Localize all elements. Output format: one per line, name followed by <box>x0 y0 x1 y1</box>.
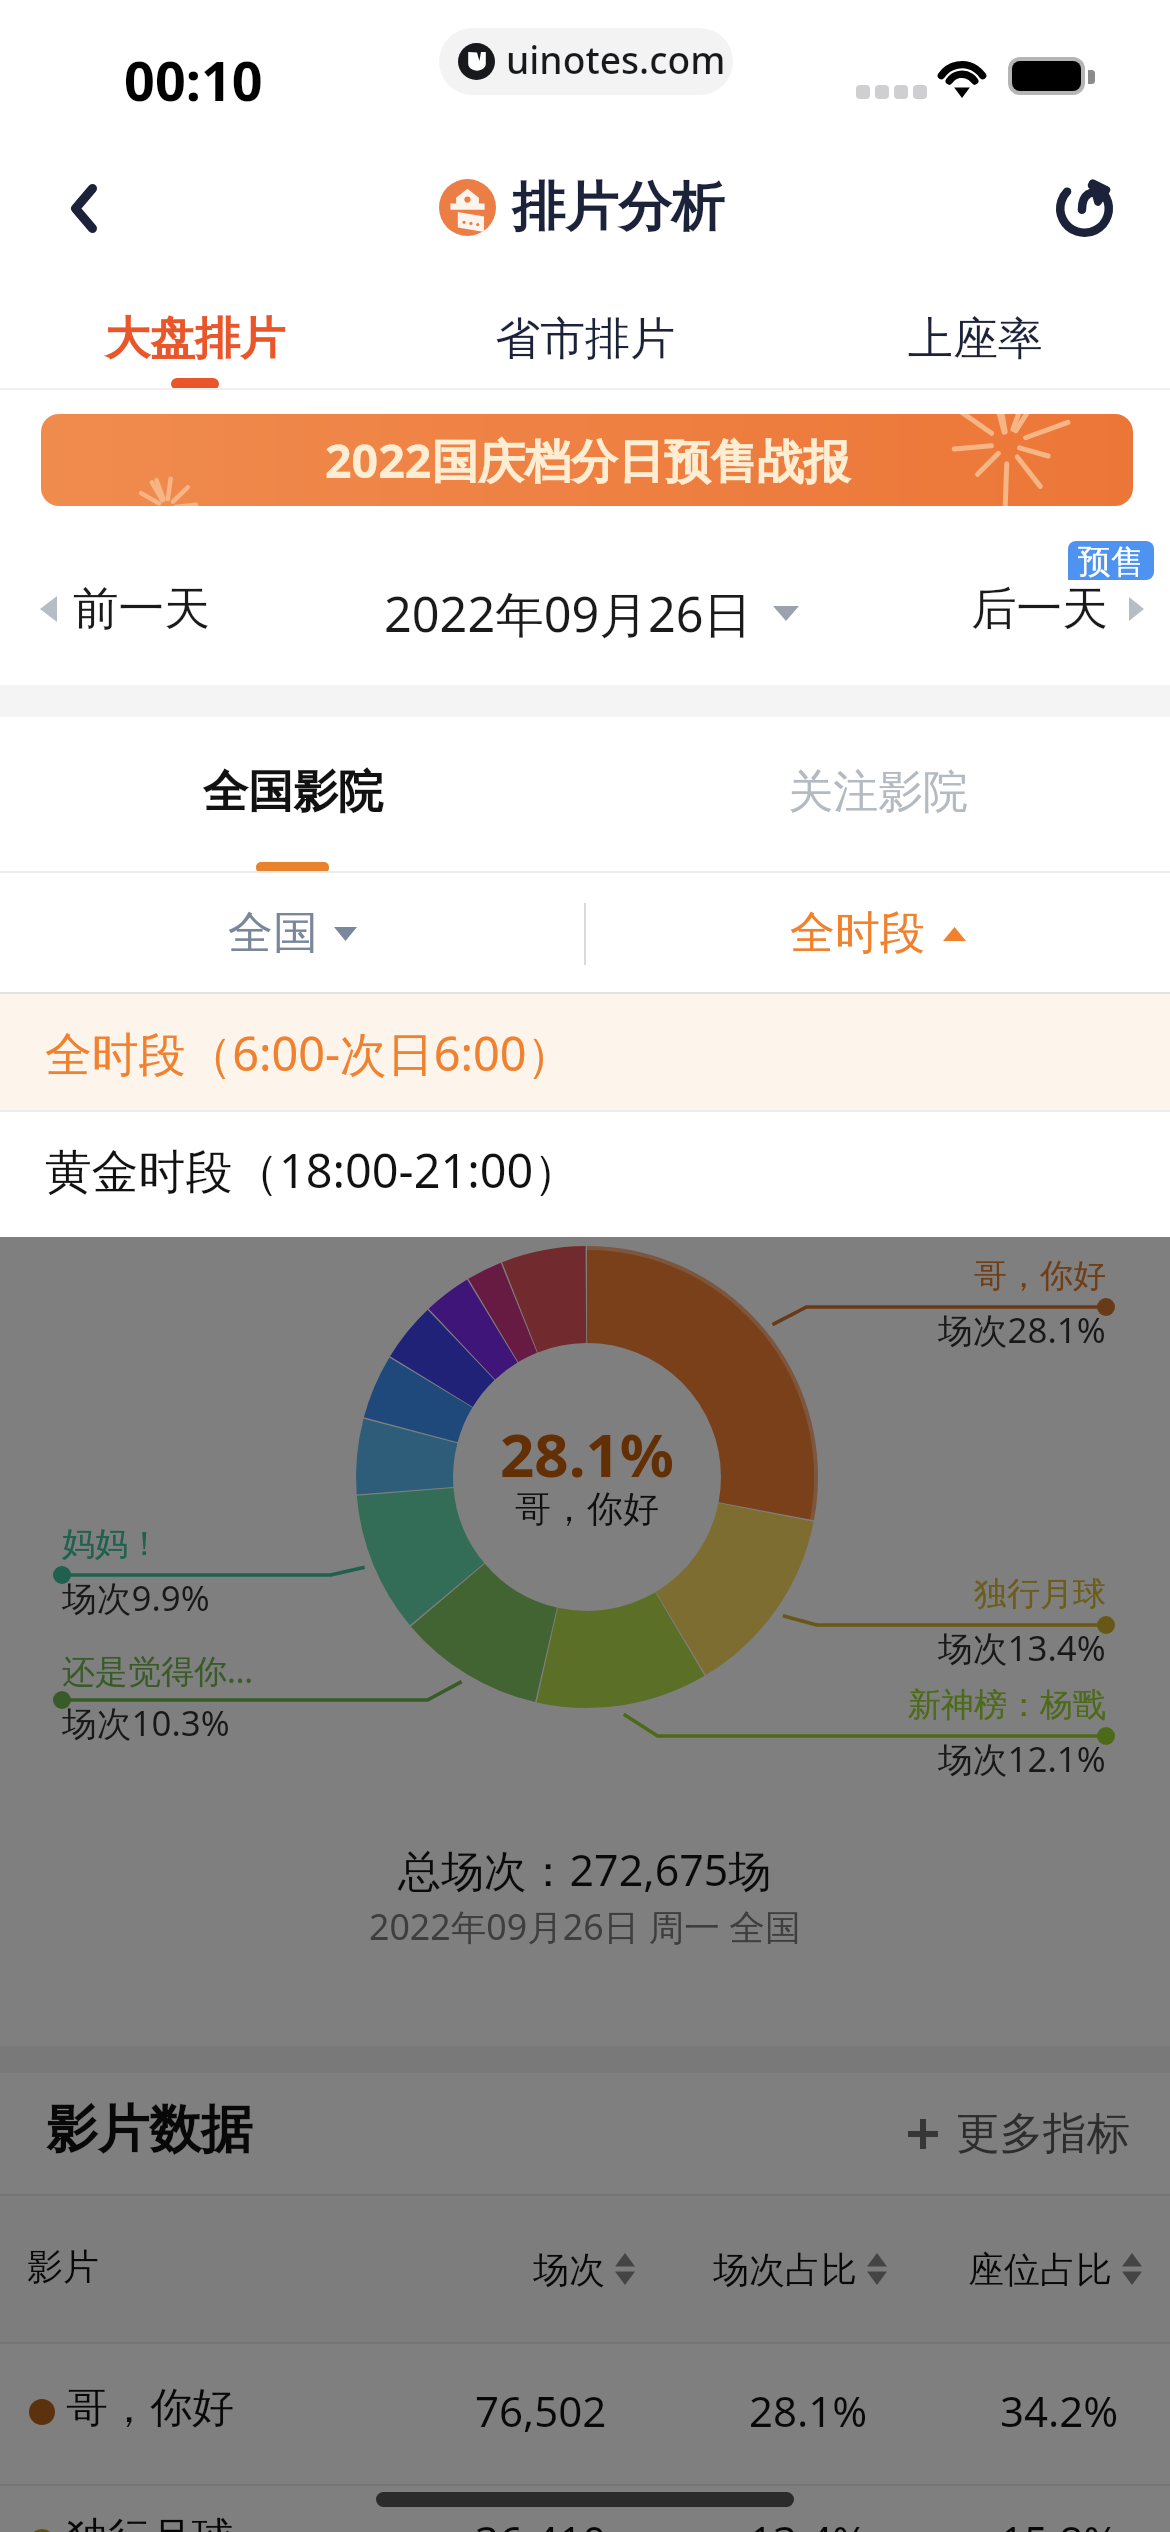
staticText: uinotes.com <box>506 34 726 85</box>
staticText: 前一天 <box>73 580 210 637</box>
staticText: 更多指标 <box>956 2106 1130 2161</box>
staticText: 哥，你好 <box>66 2382 234 2435</box>
button[interactable]: 独行月球 <box>0 2484 1170 2532</box>
staticText: 28.1% <box>500 1413 674 1495</box>
staticText: 全国影院 <box>203 764 383 821</box>
staticText: 13.4% <box>749 2512 868 2532</box>
button[interactable]: 省市排片 <box>390 276 780 398</box>
staticText: 场次9.9% <box>62 1574 210 1622</box>
staticText: 场次 <box>533 2247 605 2292</box>
staticText: 34.2% <box>1000 2382 1119 2439</box>
staticText: 76,502 <box>475 2382 607 2439</box>
button[interactable]: 黄金时段（18:00-21:00） <box>0 1112 1170 1237</box>
button[interactable]: 更多指标 <box>908 2106 1130 2161</box>
staticText: 00:10 <box>124 43 263 117</box>
staticText: 座位占比 <box>968 2247 1112 2292</box>
button[interactable]: 全时段（6:00-次日6:00） <box>0 994 1170 1112</box>
staticText: 哥，你好 <box>515 1486 659 1531</box>
button[interactable]: 大盘排片 <box>0 276 390 398</box>
staticText: 影片数据 <box>46 2097 253 2162</box>
staticText: 妈妈！ <box>62 1523 161 1565</box>
staticText: 独行月球 <box>974 1573 1106 1615</box>
button[interactable]: 场次 <box>454 2194 714 2344</box>
staticText: 2022年09月26日 <box>384 580 753 646</box>
staticText: 场次10.3% <box>62 1699 230 1747</box>
staticText: 独行月球 <box>66 2512 234 2532</box>
button[interactable]: Share <box>998 140 1170 276</box>
staticText: 新神榜：杨戬 <box>908 1684 1106 1726</box>
staticText: 全时段（6:00-次日6:00） <box>45 1021 574 1085</box>
staticText: 2022年09月26日 周一 全国 <box>369 1902 801 1951</box>
button[interactable]: 全国影院 <box>0 717 585 873</box>
staticText: 省市排片 <box>495 311 675 368</box>
staticText: 28.1% <box>749 2382 868 2439</box>
button[interactable]: 2022年09月26日 <box>384 580 799 646</box>
button[interactable]: Back <box>0 140 168 276</box>
staticText: 场次13.4% <box>938 1624 1106 1672</box>
staticText: 预售 <box>1078 541 1144 580</box>
button[interactable]: 哥，你好 <box>0 2344 1170 2484</box>
staticText: 关注影院 <box>788 764 968 821</box>
button[interactable]: 座位占比 <box>925 2194 1170 2344</box>
staticText: 总场次：272,675场 <box>398 1840 772 1899</box>
staticText: 还是觉得你… <box>62 1648 254 1693</box>
button[interactable]: 全时段 <box>585 873 1170 994</box>
staticText: 场次28.1% <box>938 1306 1106 1354</box>
staticText: 2022国庆档分日预售战报 <box>325 428 850 492</box>
staticText: 全国 <box>228 905 318 962</box>
button[interactable]: 2022国庆档分日预售战报 <box>41 414 1133 506</box>
staticText: 36,410 <box>475 2512 607 2532</box>
button[interactable]: 场次占比 <box>670 2194 930 2344</box>
staticText: 场次12.1% <box>938 1735 1106 1783</box>
staticText: 大盘排片 <box>105 311 285 368</box>
staticText: 黄金时段（18:00-21:00） <box>45 1138 581 1202</box>
staticText: 15.8% <box>1000 2512 1119 2532</box>
staticText: 哥，你好 <box>974 1255 1106 1297</box>
staticText: 影片 <box>27 2244 99 2289</box>
staticText: 后一天 <box>971 580 1108 637</box>
staticText: 全时段 <box>790 905 925 962</box>
button[interactable]: 关注影院 <box>585 717 1170 873</box>
button[interactable]: 全国 <box>0 873 585 994</box>
staticText: 场次占比 <box>713 2247 857 2292</box>
button[interactable]: 前一天 <box>40 580 210 637</box>
staticText: 排片分析 <box>512 174 725 241</box>
staticText: 上座率 <box>908 311 1043 368</box>
button[interactable]: 后一天 <box>971 580 1144 637</box>
button[interactable]: 上座率 <box>780 276 1170 398</box>
